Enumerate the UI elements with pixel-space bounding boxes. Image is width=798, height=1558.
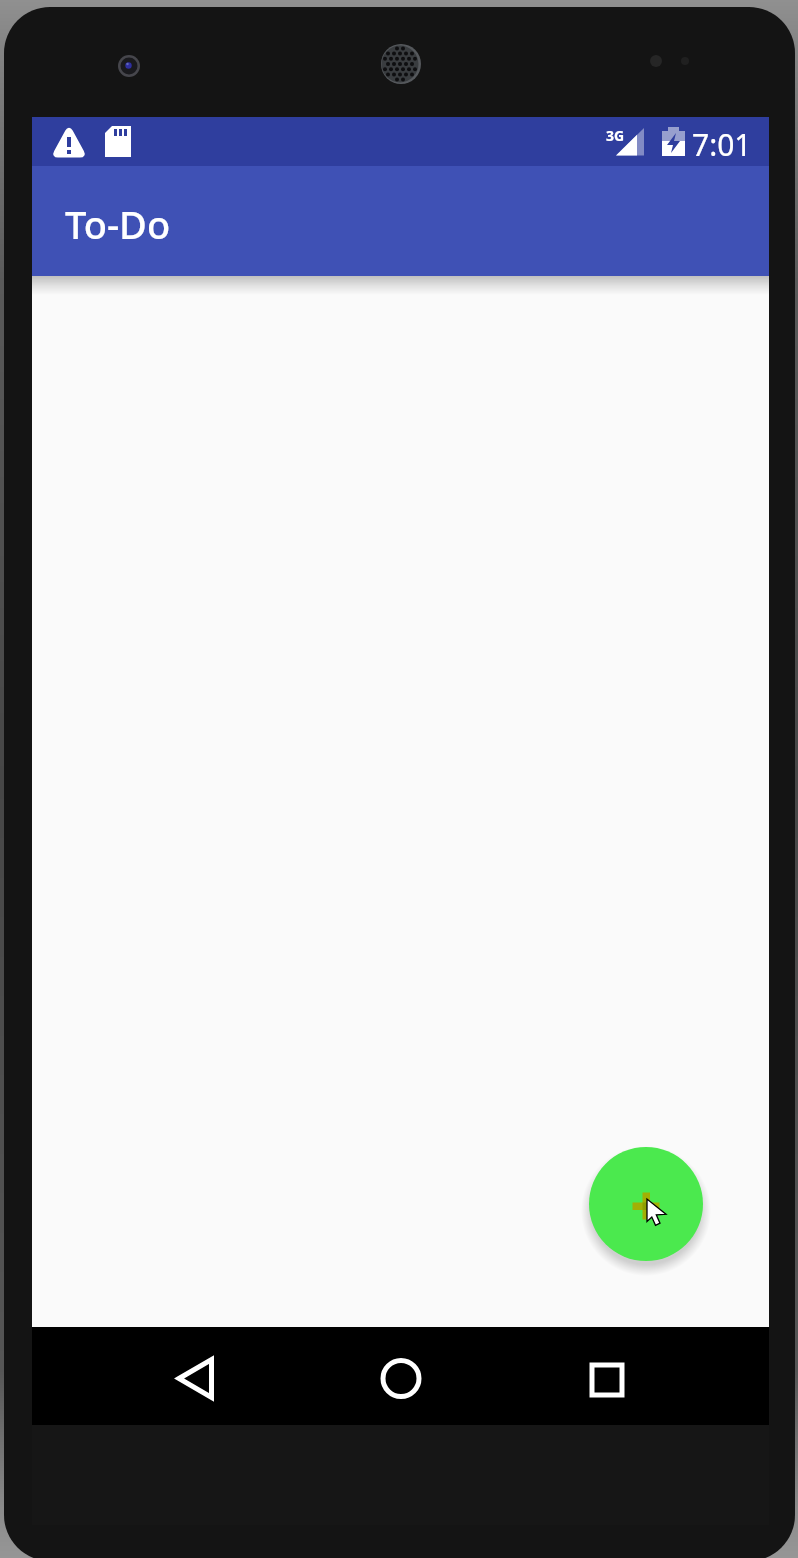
staticText: To-Do xyxy=(65,198,171,250)
button[interactable] xyxy=(370,1346,430,1406)
button[interactable] xyxy=(577,1346,637,1406)
button[interactable] xyxy=(589,1147,703,1261)
staticText: 7:01 xyxy=(692,124,752,165)
staticText: 3G xyxy=(606,126,625,145)
button[interactable] xyxy=(167,1346,227,1406)
